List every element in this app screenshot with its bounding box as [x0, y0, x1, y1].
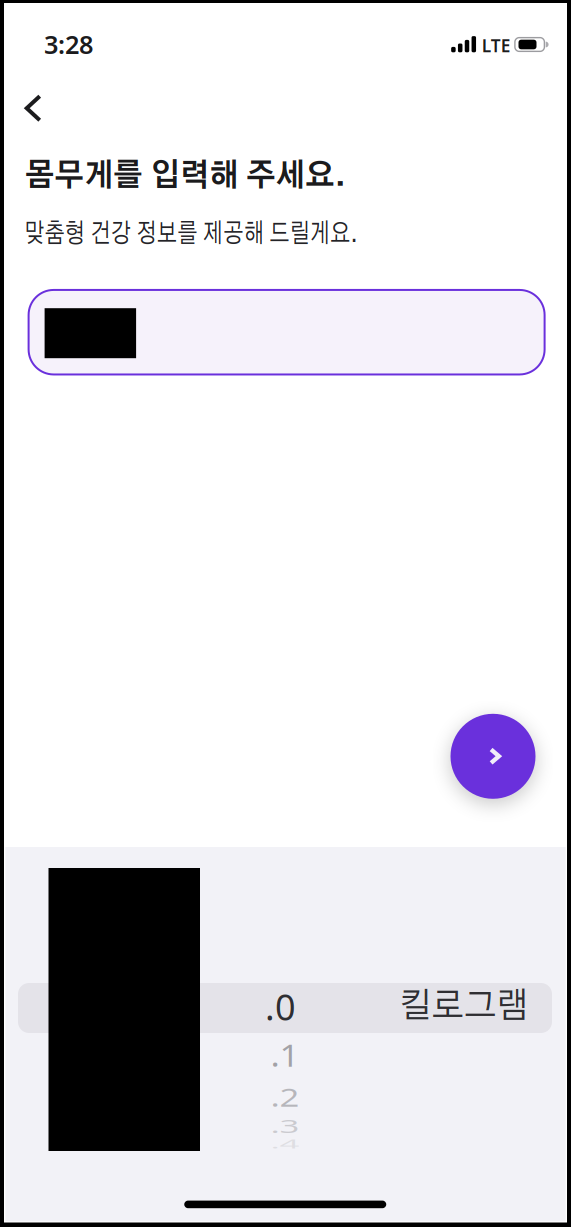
staticText: LTE	[482, 34, 511, 57]
staticText: .3	[270, 1103, 299, 1149]
staticText: 킬로그램	[392, 989, 528, 1024]
staticText: 3:28	[44, 27, 93, 61]
staticText: 맞춤형 건강 정보를 제공해 드릴게요.	[24, 221, 451, 247]
staticText: .2	[270, 1074, 299, 1120]
staticText: .1	[270, 1032, 299, 1078]
staticText: 몸무게를 입력해 주세요.	[25, 161, 363, 192]
button[interactable]: Back	[11, 86, 55, 130]
button[interactable]: Weight input	[29, 290, 545, 374]
staticText: .4	[270, 1121, 299, 1167]
staticText: .0	[265, 983, 296, 1030]
button[interactable]: Next	[450, 714, 535, 799]
